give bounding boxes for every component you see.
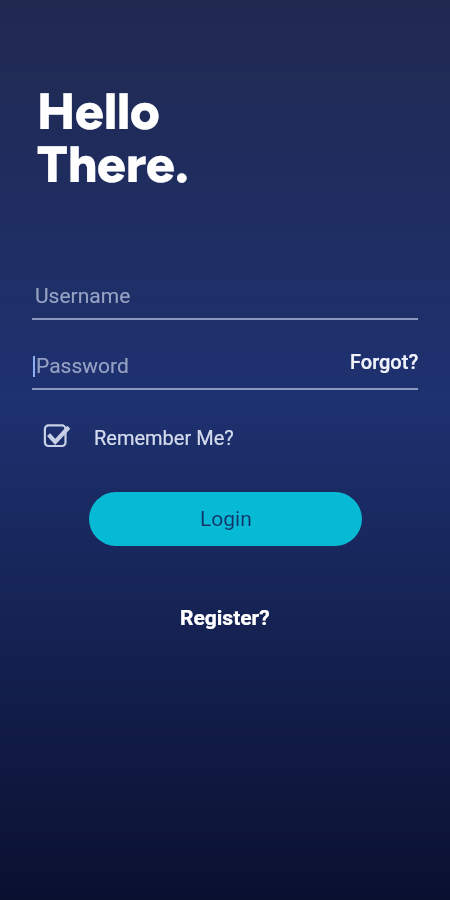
button[interactable]: Login	[89, 492, 362, 546]
staticText: Username	[35, 284, 131, 309]
staticText: Password	[36, 354, 129, 379]
staticText: Login	[200, 507, 252, 532]
button[interactable]: Username	[32, 284, 418, 320]
staticText: Remember Me?	[94, 426, 234, 449]
button[interactable]: Register?	[170, 601, 280, 636]
staticText: Register?	[180, 606, 270, 631]
button[interactable]: Password	[32, 354, 418, 390]
staticText: Forgot?	[350, 350, 419, 373]
button[interactable]: Forgot?	[344, 345, 425, 378]
button[interactable]: Remember Me?	[41, 421, 234, 453]
